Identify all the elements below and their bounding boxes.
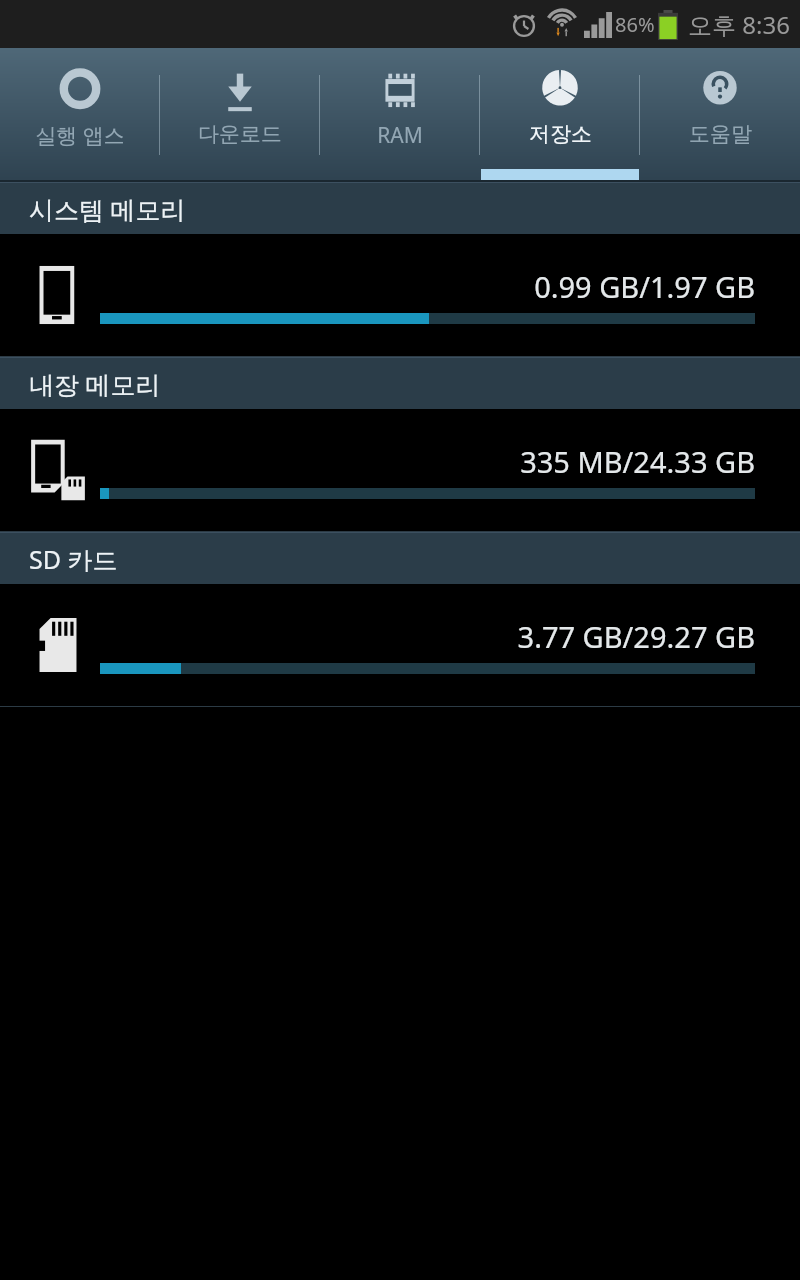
staticText: 실행 앱스 — [35, 121, 125, 150]
button[interactable]: 실행 앱스 — [0, 48, 160, 182]
button[interactable]: 0.99 GB/1.97 GB — [0, 234, 800, 357]
staticText: SD 카드 — [29, 542, 118, 576]
button[interactable]: 3.77 GB/29.27 GB — [0, 584, 800, 707]
staticText: 86% — [615, 11, 655, 38]
button[interactable]: RAM — [320, 48, 480, 182]
staticText: 3.77 GB/29.27 GB — [100, 617, 755, 656]
staticText: 오후 8:36 — [688, 8, 790, 41]
button[interactable]: 다운로드 — [160, 48, 320, 182]
staticText: 시스템 메모리 — [29, 192, 186, 226]
button[interactable]: 저장소 — [480, 48, 640, 182]
staticText: 0.99 GB/1.97 GB — [100, 267, 755, 306]
staticText: RAM — [377, 121, 423, 150]
staticText: 저장소 — [529, 121, 592, 147]
staticText: 335 MB/24.33 GB — [100, 442, 755, 481]
staticText: 내장 메모리 — [29, 367, 161, 401]
staticText: 도움말 — [689, 121, 752, 147]
button[interactable]: 335 MB/24.33 GB — [0, 409, 800, 532]
staticText: 다운로드 — [198, 121, 282, 147]
button[interactable]: 도움말 — [640, 48, 800, 182]
